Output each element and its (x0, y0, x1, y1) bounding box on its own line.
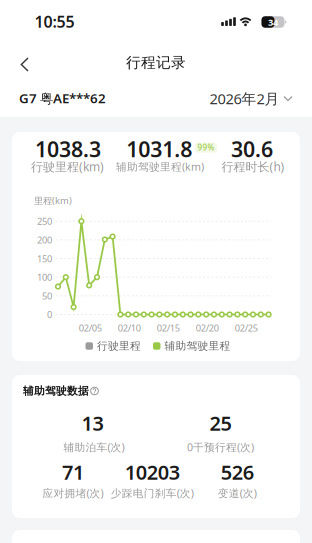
staticText: G7 粤AE***62 (19, 89, 106, 107)
staticText: 02/25 (235, 322, 258, 334)
button[interactable]: Help (88, 385, 100, 397)
staticText: 100 (37, 271, 52, 283)
staticText: 2026年2月 (209, 89, 279, 108)
staticText: 10203 (125, 459, 180, 485)
staticText: 行程记录 (126, 53, 186, 71)
staticText: 526 (221, 459, 254, 485)
staticText: 10:55 (34, 11, 74, 32)
button[interactable]: Back (4, 44, 44, 84)
staticText: 辅助驾驶里程(km) (116, 159, 204, 174)
staticText: 辅助驾驶数据 (23, 384, 89, 397)
staticText: 02/20 (196, 322, 219, 334)
staticText: 25 (209, 410, 231, 436)
staticText: 99% (197, 142, 214, 153)
staticText: 行驶里程(km) (31, 158, 104, 174)
staticText: 变道(次) (218, 486, 257, 500)
staticText: 行驶里程 (97, 339, 141, 352)
staticText: 辅助泊车(次) (63, 440, 124, 454)
staticText: 13 (81, 410, 103, 436)
button[interactable]: 2026年2月 (209, 89, 292, 108)
staticText: 行程时长(h) (221, 158, 284, 174)
staticText: 0 (47, 308, 52, 321)
staticText: 02/10 (118, 322, 141, 334)
staticText: 0干预行程(次) (187, 440, 254, 454)
staticText: 应对拥堵(次) (42, 486, 103, 500)
staticText: 里程(km) (34, 194, 72, 207)
staticText: 150 (37, 252, 52, 265)
staticText: 少踩电门刹车(次) (111, 486, 194, 500)
staticText: 30.6 (231, 135, 273, 163)
staticText: 02/15 (157, 322, 180, 334)
staticText: 辅助驾驶里程 (164, 339, 230, 352)
staticText: 200 (37, 234, 52, 246)
staticText: 250 (37, 215, 52, 227)
staticText: 50 (42, 290, 52, 302)
staticText: 1031.8 (126, 135, 192, 163)
staticText: 1038.3 (35, 135, 101, 163)
staticText: 71 (62, 459, 84, 485)
staticText: 02/05 (79, 322, 102, 334)
staticText: 34 (268, 16, 278, 28)
